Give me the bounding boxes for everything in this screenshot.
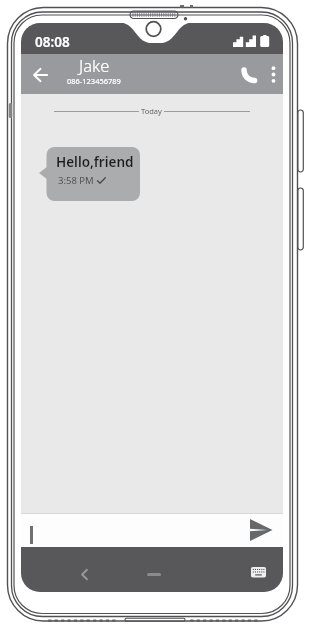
button[interactable] bbox=[249, 518, 273, 542]
button[interactable] bbox=[138, 560, 169, 588]
button[interactable] bbox=[243, 561, 273, 583]
button[interactable] bbox=[237, 60, 263, 88]
button[interactable] bbox=[68, 560, 100, 588]
staticText: Hello,friend bbox=[56, 153, 134, 171]
button[interactable] bbox=[27, 62, 53, 88]
staticText: 3:58 PM bbox=[58, 174, 94, 187]
button[interactable] bbox=[266, 59, 281, 89]
button[interactable]: Hello,friend bbox=[39, 147, 140, 201]
staticText: 08:08 bbox=[35, 33, 70, 51]
staticText: Jake bbox=[79, 54, 110, 76]
staticText: 086-123456789 bbox=[67, 76, 121, 86]
button[interactable] bbox=[21, 513, 283, 547]
staticText: Today bbox=[141, 106, 162, 116]
